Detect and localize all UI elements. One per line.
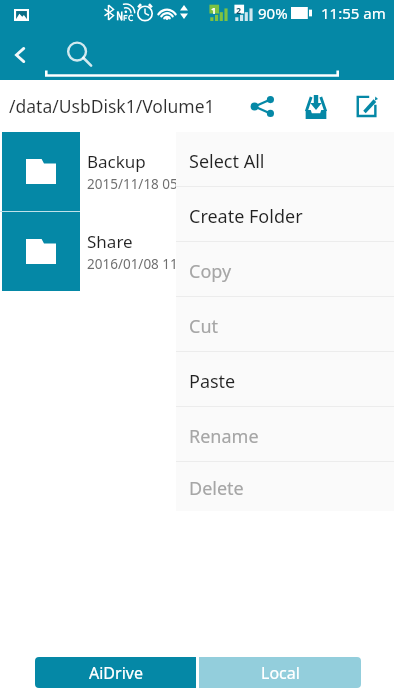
staticText: Copy (189, 259, 232, 284)
button[interactable]: Select All (176, 132, 394, 186)
staticText: 2 (236, 4, 242, 16)
staticText: 2016/01/08 11: (87, 255, 182, 273)
staticText: 1 (211, 4, 217, 16)
staticText: 11:55 am (321, 3, 386, 23)
staticText: Select All (189, 149, 265, 174)
button[interactable]: AiDrive (35, 657, 196, 688)
staticText: Backup (87, 150, 146, 173)
staticText: Paste (189, 369, 236, 394)
button[interactable]: Create Folder (176, 187, 394, 241)
button[interactable]: Backup (0, 132, 394, 211)
button[interactable]: Rename (176, 407, 394, 461)
button[interactable] (45, 25, 339, 77)
button[interactable]: Edit (347, 86, 387, 126)
button[interactable]: Copy (176, 242, 394, 296)
button[interactable]: Share (0, 212, 394, 291)
staticText: 90% (258, 3, 288, 23)
button[interactable]: Move to inbox (296, 86, 336, 126)
staticText: Create Folder (189, 204, 303, 229)
button[interactable]: Cut (176, 297, 394, 351)
staticText: AiDrive (89, 662, 143, 684)
button[interactable]: Delete (176, 462, 394, 511)
staticText: /data/UsbDisk1/Volume1 (9, 94, 215, 118)
button[interactable]: Back (0, 34, 40, 74)
button[interactable]: Paste (176, 352, 394, 406)
button[interactable]: Share (242, 86, 282, 126)
staticText: Cut (189, 314, 218, 339)
staticText: Share (87, 230, 133, 253)
button[interactable]: Local (199, 657, 361, 688)
staticText: Delete (189, 476, 244, 501)
staticText: Local (261, 662, 300, 684)
staticText: 2015/11/18 05: (87, 175, 182, 193)
staticText: Rename (189, 424, 259, 449)
